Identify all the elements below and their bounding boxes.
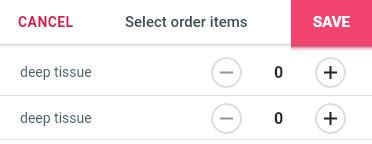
staticText: Select order items: [125, 13, 248, 31]
button[interactable]: [315, 103, 346, 134]
staticText: 0: [274, 63, 284, 82]
button[interactable]: deep tissue: [0, 48, 372, 96]
staticText: 0: [274, 109, 284, 128]
button[interactable]: CANCEL: [0, 0, 84, 44]
button[interactable]: deep tissue: [0, 96, 372, 140]
button[interactable]: [211, 57, 242, 88]
button[interactable]: [315, 57, 346, 88]
button[interactable]: SAVE: [291, 0, 372, 48]
button[interactable]: [211, 103, 242, 134]
staticText: CANCEL: [18, 14, 74, 30]
staticText: SAVE: [313, 13, 351, 31]
staticText: deep tissue: [20, 64, 92, 80]
staticText: deep tissue: [20, 110, 92, 126]
